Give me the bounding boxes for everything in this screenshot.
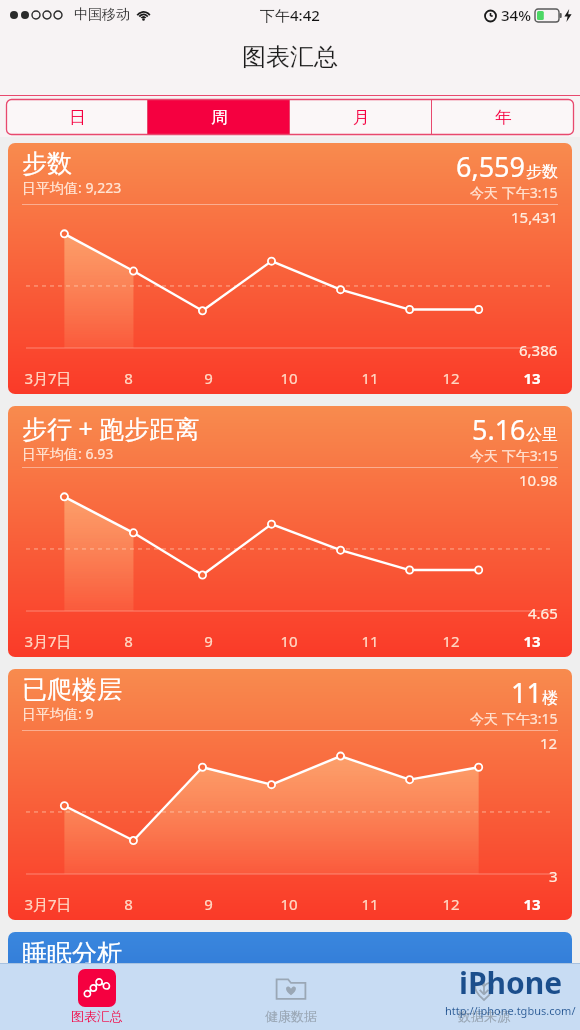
staticText: 9 <box>204 368 213 388</box>
button[interactable]: 月 <box>290 99 432 135</box>
staticText: 11 <box>361 368 379 388</box>
staticText: 8 <box>124 368 133 388</box>
button[interactable]: 步数 <box>8 143 572 394</box>
staticText: 年 <box>495 107 512 128</box>
staticText: 12 <box>442 631 460 651</box>
staticText: 月 <box>353 107 370 128</box>
staticText: 图表汇总 <box>71 1008 123 1024</box>
staticText: 中国移动 <box>74 6 130 24</box>
staticText: 楼 <box>542 688 558 708</box>
staticText: 12 <box>540 733 558 753</box>
staticText: 11 <box>361 631 379 651</box>
staticText: 8 <box>124 894 133 914</box>
staticText: 8 <box>124 631 133 651</box>
button[interactable]: 睡眠分析 <box>8 932 572 1022</box>
staticText: 11 <box>511 674 542 711</box>
staticText: http://iphone.tgbus.com/ <box>445 1003 576 1018</box>
staticText: 12 <box>442 368 460 388</box>
staticText: 9 <box>204 631 213 651</box>
staticText: 13 <box>523 631 541 651</box>
staticText: 睡眠分析 <box>22 938 122 969</box>
staticText: 周 <box>211 107 228 128</box>
button[interactable]: 健康数据 <box>194 963 387 1030</box>
staticText: 下午4:42 <box>260 5 320 25</box>
staticText: 日平均值: 9,223 <box>22 178 122 197</box>
staticText: 15,431 <box>511 207 558 227</box>
staticText: 10 <box>280 894 298 914</box>
staticText: 10 <box>280 368 298 388</box>
staticText: 日平均值: 9 <box>22 704 94 723</box>
staticText: 13 <box>523 894 541 914</box>
staticText: 11 <box>361 894 379 914</box>
staticText: 10 <box>280 631 298 651</box>
staticText: 12 <box>442 894 460 914</box>
staticText: 3月7日 <box>24 368 72 388</box>
staticText: 今天 下午3:15 <box>470 709 558 728</box>
staticText: 已爬楼层 <box>22 674 122 705</box>
staticText: 3 <box>549 866 558 886</box>
staticText: 13 <box>523 368 541 388</box>
staticText: 4.65 <box>528 603 558 623</box>
staticText: 9 <box>204 894 213 914</box>
staticText: 6,559 <box>456 148 526 185</box>
staticText: 今天 下午3:15 <box>470 446 558 465</box>
button[interactable]: 步行 + 跑步距离 <box>8 406 572 657</box>
button[interactable]: 已爬楼层 <box>8 669 572 920</box>
button[interactable]: 年 <box>432 99 574 135</box>
staticText: 日平均值: 6.93 <box>22 444 114 463</box>
staticText: 5.16 <box>472 411 526 448</box>
staticText: 3月7日 <box>24 894 72 914</box>
button[interactable]: 周 <box>148 99 290 135</box>
button[interactable]: 图表汇总 <box>0 963 194 1030</box>
staticText: 日 <box>69 107 86 128</box>
staticText: 今天 下午3:15 <box>470 183 558 202</box>
staticText: 健康数据 <box>265 1008 317 1024</box>
staticText: 公里 <box>526 425 558 445</box>
staticText: 数据来源 <box>458 1008 510 1024</box>
staticText: 图表汇总 <box>242 42 338 72</box>
staticText: 10.98 <box>519 470 558 490</box>
staticText: 步数 <box>22 148 72 179</box>
staticText: 34% <box>501 5 531 25</box>
button[interactable]: 数据来源 <box>387 963 580 1030</box>
staticText: 3月7日 <box>24 631 72 651</box>
staticText: 步行 + 跑步距离 <box>22 411 200 445</box>
staticText: 步数 <box>526 162 558 182</box>
button[interactable]: 日 <box>6 99 148 135</box>
staticText: 6,386 <box>519 340 558 360</box>
staticText: iPhone <box>459 962 563 1003</box>
